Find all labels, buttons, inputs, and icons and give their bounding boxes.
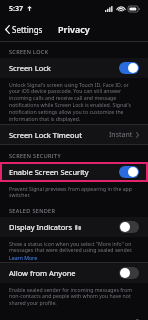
staticText: Settings — [12, 24, 43, 35]
button[interactable]: Screen Lock — [0, 58, 148, 78]
staticText: Show a status icon when you select "More… — [9, 240, 139, 254]
staticText: Enable Screen Security — [9, 167, 89, 177]
staticText: SCREEN SECURITY — [9, 152, 148, 159]
staticText: Prevent Signal previews from appearing i… — [9, 185, 139, 199]
staticText: 5:37 — [9, 4, 23, 14]
staticText: SCREEN LOCK — [9, 48, 148, 55]
staticText: Unlock Signal's screen using Touch ID, F… — [9, 81, 139, 123]
button[interactable]: Display Indicators — [119, 221, 139, 233]
staticText: Instant — [109, 130, 133, 140]
button[interactable]: Display Indicators — [0, 217, 148, 237]
staticText: SEALED SENDER — [9, 207, 148, 214]
staticText: Learn More — [9, 254, 38, 261]
button[interactable]: Allow from Anyone — [0, 263, 148, 283]
staticText: Screen Lock — [9, 63, 51, 73]
staticText: Screen Lock Timeout — [9, 130, 82, 140]
staticText: Display Indicators — [9, 222, 72, 232]
button[interactable]: Allow from Anyone — [119, 267, 139, 279]
staticText: Enable sealed sender for incoming messag… — [9, 286, 139, 307]
button[interactable]: Enable Screen Security — [119, 166, 139, 178]
staticText: Privacy — [58, 23, 90, 35]
staticText: Allow from Anyone — [9, 268, 76, 278]
button[interactable]: Settings — [0, 17, 49, 41]
button[interactable]: Enable Screen Security — [0, 162, 148, 182]
button[interactable]: Screen Lock — [119, 62, 139, 74]
button[interactable]: Screen Lock Timeout — [0, 125, 148, 144]
